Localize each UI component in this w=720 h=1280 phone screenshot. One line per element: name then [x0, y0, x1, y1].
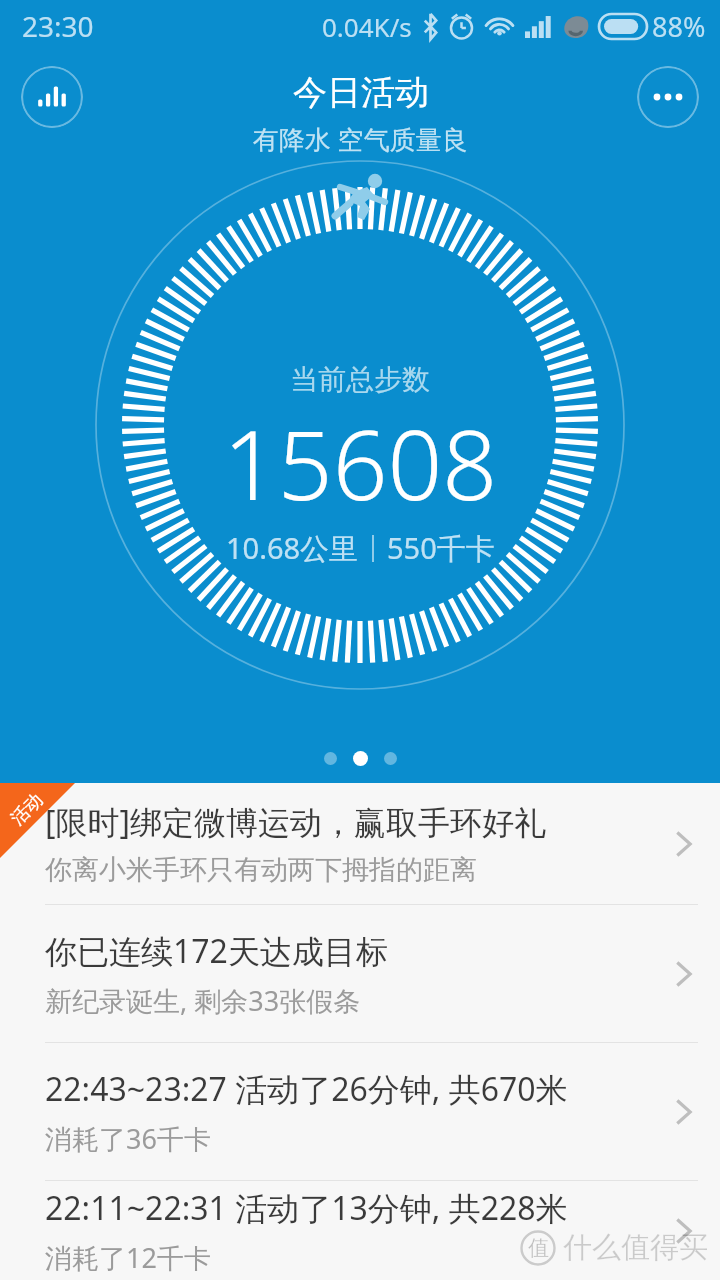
staticText: 消耗了12千卡: [45, 1239, 211, 1276]
button[interactable]: 22:43~23:27 活动了26分钟, 共670米: [0, 1043, 720, 1180]
button[interactable]: 你已连续172天达成目标: [0, 905, 720, 1042]
staticText: 你离小米手环只有动两下拇指的距离: [45, 853, 477, 887]
staticText: 消耗了36千卡: [45, 1120, 211, 1157]
staticText: 什么值得买: [563, 1229, 708, 1266]
button[interactable]: 22:11~22:31 活动了13分钟, 共228米: [0, 1181, 720, 1280]
staticText: 15608: [223, 397, 498, 528]
button[interactable]: More options: [637, 66, 699, 128]
staticText: 10.68公里: [226, 528, 359, 568]
staticText: 今日活动: [293, 71, 429, 114]
button[interactable]: Statistics: [21, 66, 83, 128]
staticText: 有降水 空气质量良: [253, 121, 468, 157]
staticText: 0.04K/s: [322, 9, 412, 44]
staticText: 22:11~22:31 活动了13分钟, 共228米: [45, 1186, 568, 1230]
button[interactable]: [限时]绑定微博运动，赢取手环好礼: [0, 783, 720, 904]
staticText: 新纪录诞生, 剩余33张假条: [45, 982, 361, 1019]
staticText: 23:30: [22, 7, 94, 45]
staticText: 88%: [652, 8, 706, 45]
staticText: 550千卡: [387, 528, 495, 568]
staticText: 当前总步数: [290, 362, 430, 397]
staticText: 22:43~23:27 活动了26分钟, 共670米: [45, 1067, 568, 1111]
staticText: [限时]绑定微博运动，赢取手环好礼: [45, 800, 547, 844]
staticText: 值: [528, 1235, 549, 1261]
staticText: 活动: [6, 789, 48, 830]
staticText: 你已连续172天达成目标: [45, 929, 388, 973]
